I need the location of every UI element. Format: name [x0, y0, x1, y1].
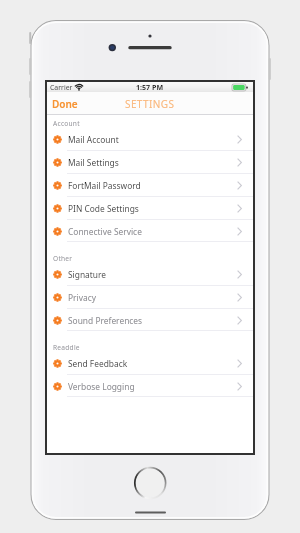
staticText: Connective Service	[68, 226, 142, 237]
button[interactable]: Privacy	[47, 286, 253, 308]
button[interactable]: FortMail Password	[47, 174, 253, 196]
staticText: FortMail Password	[68, 180, 141, 191]
staticText: SETTINGS	[125, 97, 175, 111]
staticText: Sound Preferences	[68, 315, 143, 326]
staticText: Carrier	[50, 83, 73, 92]
staticText: PIN Code Settings	[68, 203, 139, 214]
staticText: Account	[53, 119, 253, 128]
staticText: Mail Account	[68, 134, 119, 145]
staticText: Other	[53, 254, 253, 263]
button[interactable]: Sound Preferences	[47, 309, 253, 331]
staticText: 1:57 PM	[136, 82, 164, 92]
button[interactable]: PIN Code Settings	[47, 197, 253, 219]
staticText: Privacy	[68, 292, 96, 303]
button[interactable]: Send Feedback	[47, 352, 253, 374]
staticText: Send Feedback	[68, 358, 128, 369]
button[interactable]: Signature	[47, 263, 253, 285]
staticText: Verbose Logging	[68, 381, 135, 392]
staticText: Mail Settings	[68, 157, 119, 168]
button[interactable]: Connective Service	[47, 220, 253, 242]
button[interactable]: Done	[47, 93, 86, 115]
button[interactable]: Verbose Logging	[47, 375, 253, 397]
button[interactable]: Mail Account	[47, 128, 253, 150]
staticText: Readdle	[53, 343, 253, 352]
button[interactable]: Mail Settings	[47, 151, 253, 173]
staticText: Done	[52, 97, 78, 111]
staticText: Signature	[68, 269, 107, 280]
